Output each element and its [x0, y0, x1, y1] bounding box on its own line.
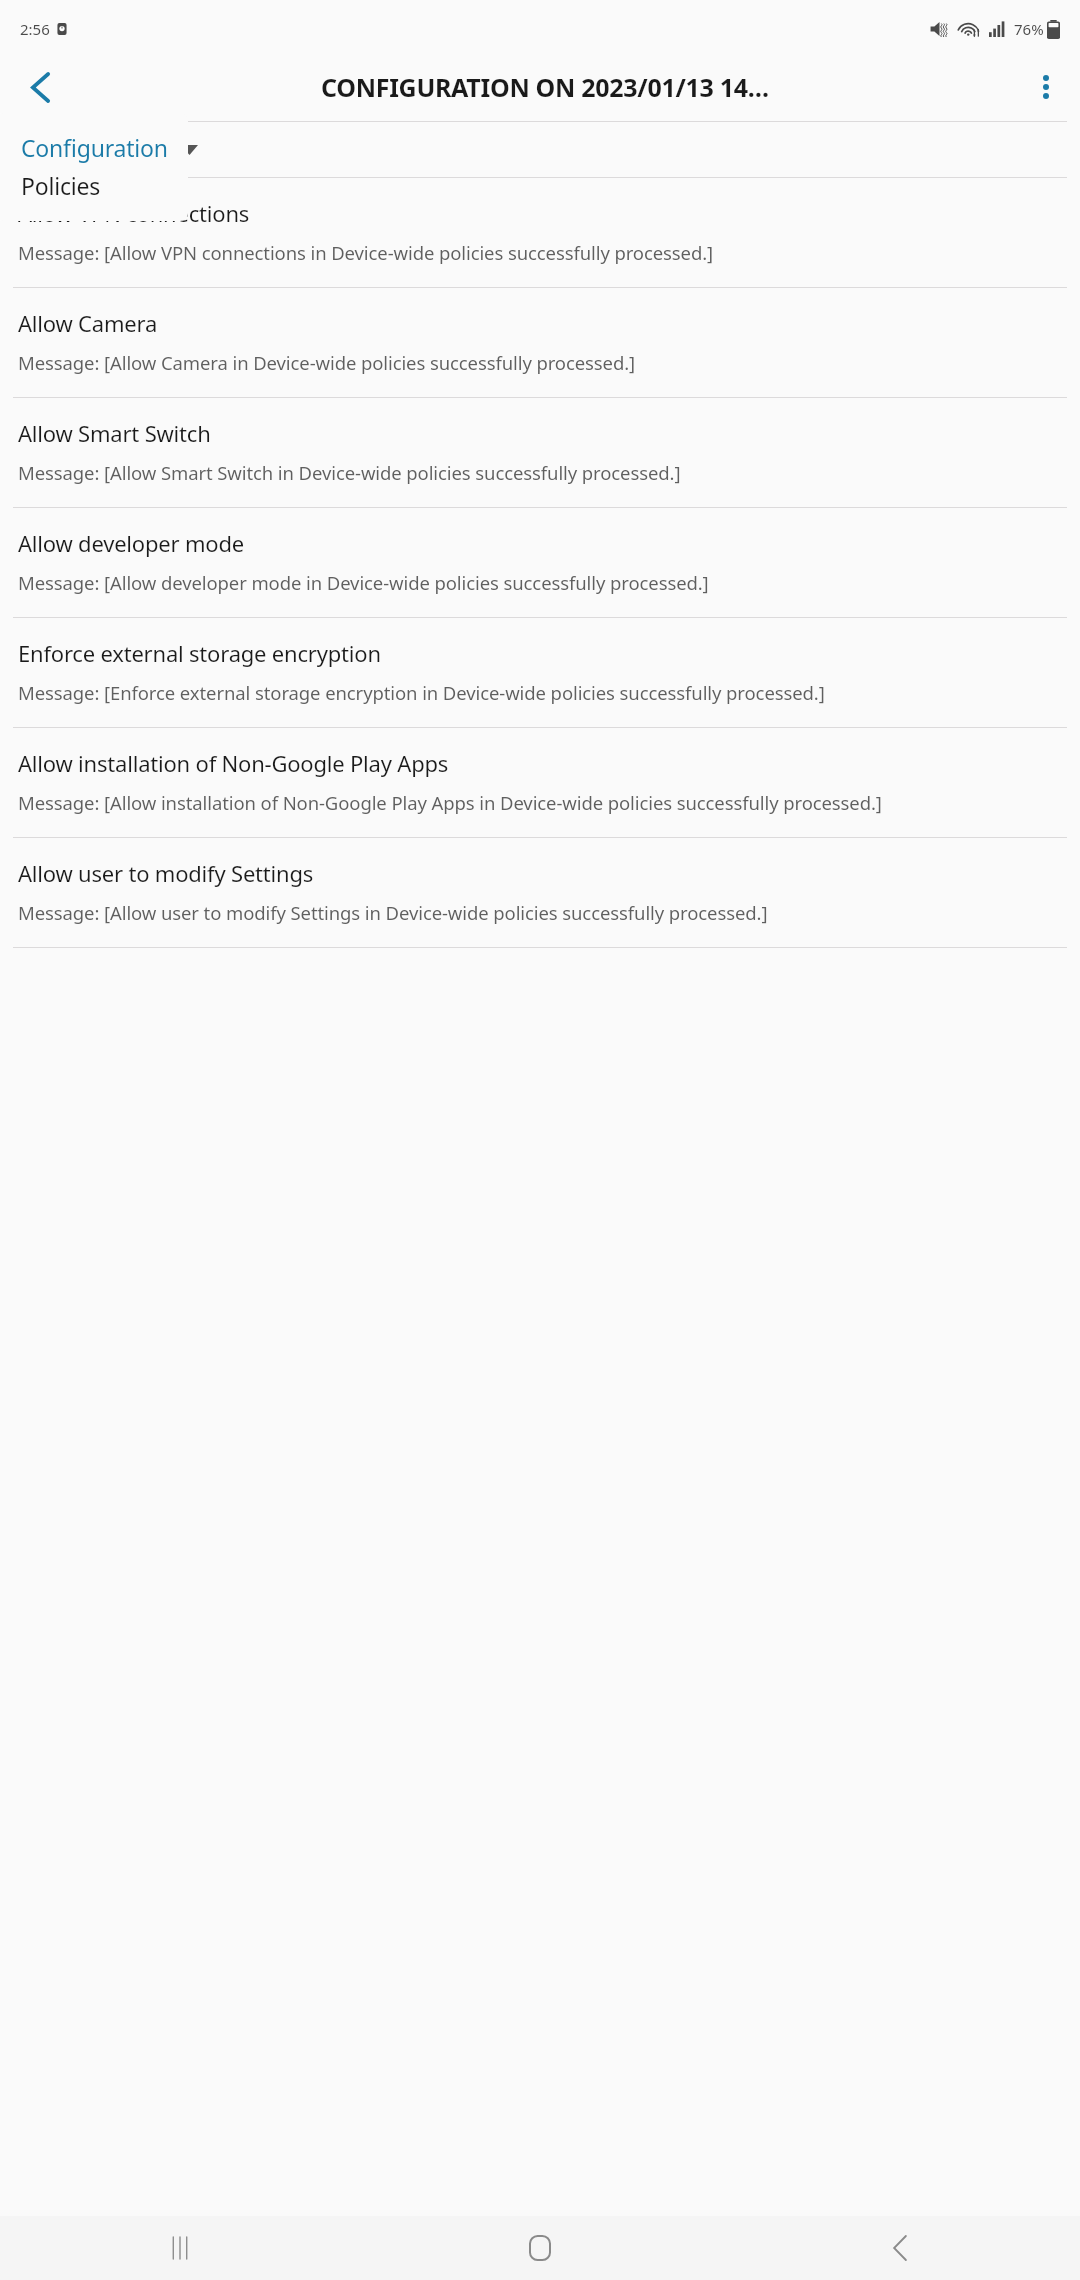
staticText: Message: [Allow Smart Switch in Device-w…: [18, 460, 681, 485]
staticText: Message: [Enforce external storage encry…: [18, 680, 825, 705]
staticText: Enforce external storage encryption: [18, 638, 381, 668]
button[interactable]: Back: [14, 61, 66, 113]
button[interactable]: Allow installation of Non-Google Play Ap…: [0, 728, 1080, 837]
staticText: Message: [Allow user to modify Settings …: [18, 900, 768, 925]
staticText: 76%: [1014, 19, 1044, 39]
staticText: Allow Smart Switch: [18, 418, 211, 448]
staticText: Message: [Allow Camera in Device-wide po…: [18, 350, 636, 375]
staticText: CONFIGURATION ON 2023/01/13 14…: [321, 70, 769, 104]
staticText: Message: [Allow installation of Non-Goog…: [18, 790, 882, 815]
staticText: Allow installation of Non-Google Play Ap…: [18, 748, 449, 778]
staticText: Message: [Allow developer mode in Device…: [18, 570, 709, 595]
button[interactable]: [0, 122, 1080, 177]
button[interactable]: More options: [1020, 61, 1072, 113]
staticText: Configuration results: [21, 132, 188, 166]
staticText: Allow Camera: [18, 308, 158, 338]
button[interactable]: Allow Smart Switch: [0, 398, 1080, 507]
button[interactable]: Back: [868, 2216, 932, 2280]
button[interactable]: Home: [508, 2216, 572, 2280]
button[interactable]: Allow VPN connections: [0, 178, 1080, 287]
staticText: Allow VPN connections: [18, 198, 250, 228]
button[interactable]: Enforce external storage encryption: [0, 618, 1080, 727]
button[interactable]: Allow Camera: [0, 288, 1080, 397]
staticText: 2:56: [20, 19, 50, 39]
staticText: Message: [Allow VPN connections in Devic…: [18, 240, 714, 265]
button[interactable]: Recents: [148, 2216, 212, 2280]
staticText: Allow user to modify Settings: [18, 858, 314, 888]
button[interactable]: Policies received: [0, 170, 188, 204]
staticText: Policies received: [21, 170, 188, 204]
button[interactable]: Allow user to modify Settings: [0, 838, 1080, 947]
button[interactable]: Allow developer mode: [0, 508, 1080, 617]
staticText: Allow developer mode: [18, 528, 244, 558]
button[interactable]: Configuration results: [0, 132, 188, 166]
